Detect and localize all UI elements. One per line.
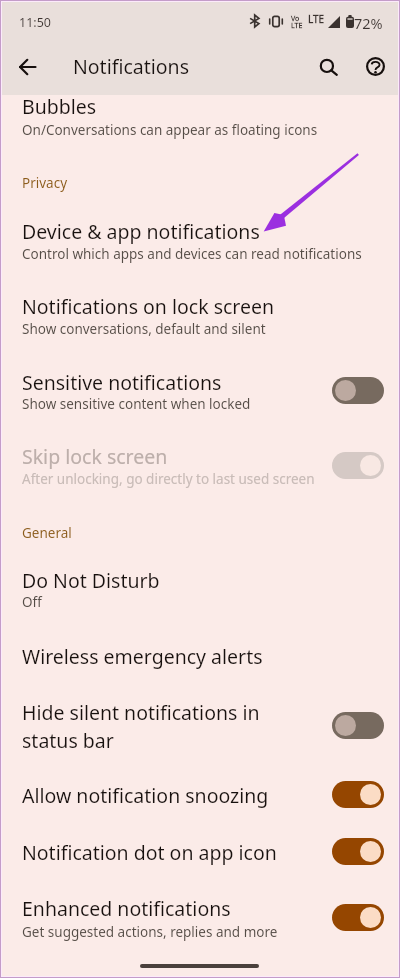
staticText: LTE [291, 21, 303, 31]
staticText: On/Conversations can appear as floating … [22, 121, 318, 139]
staticText: Hide silent notifications in status bar [22, 699, 274, 754]
staticText: 72% [354, 13, 383, 33]
staticText: Notification dot on app icon [22, 839, 332, 866]
staticText: Allow notification snoozing [22, 782, 332, 809]
staticText: Show sensitive content when locked [22, 395, 251, 413]
button[interactable]: Toggle [332, 781, 384, 808]
staticText: Off [22, 593, 42, 611]
staticText: Enhanced notifications [22, 895, 332, 922]
staticText: Vo [291, 14, 300, 24]
button[interactable]: Toggle [332, 712, 384, 739]
staticText: Privacy [22, 174, 68, 192]
staticText: Notifications [73, 53, 189, 80]
button[interactable]: Help [353, 44, 397, 88]
staticText: After unlocking, go directly to last use… [22, 470, 315, 488]
staticText: Show conversations, default and silent [22, 320, 266, 338]
staticText: Skip lock screen [22, 443, 332, 470]
button[interactable]: Toggle [332, 904, 384, 931]
staticText: Wireless emergency alerts [22, 643, 332, 670]
staticText: Do Not Disturb [22, 567, 332, 594]
staticText: General [22, 524, 72, 542]
staticText: Notifications on lock screen [22, 293, 332, 320]
staticText: Device & app notifications [22, 218, 332, 245]
staticText: Bubbles [22, 93, 332, 120]
staticText: Control which apps and devices can read … [22, 245, 362, 263]
staticText: Sensitive notifications [22, 369, 332, 396]
staticText: Get suggested actions, replies and more [22, 923, 278, 941]
button[interactable]: Back [5, 45, 49, 89]
staticText: LTE [308, 12, 325, 26]
button[interactable]: Toggle [332, 452, 384, 479]
button[interactable]: Search [307, 45, 351, 89]
button[interactable]: Toggle [332, 377, 384, 404]
staticText: 11:50 [19, 14, 51, 31]
button[interactable]: Toggle [332, 838, 384, 865]
